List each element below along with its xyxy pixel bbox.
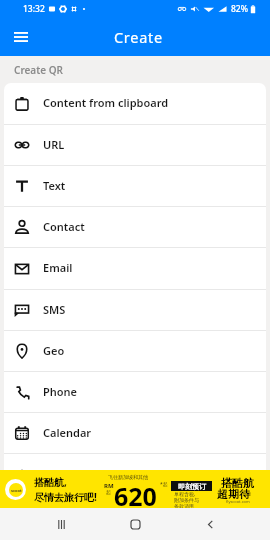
staticText: 起 — [106, 489, 111, 495]
button[interactable]: Text — [4, 166, 266, 206]
staticText: 尽情去旅行吧! — [34, 490, 97, 504]
staticText: RM — [104, 482, 114, 490]
button[interactable]: Back — [196, 510, 224, 538]
button[interactable]: Open navigation menu — [7, 23, 34, 50]
staticText: SMS — [43, 302, 66, 317]
staticText: 搭酷航 — [221, 476, 254, 490]
staticText: Contact — [43, 219, 85, 234]
staticText: *起 — [160, 481, 168, 488]
staticText: Content from clipboard — [43, 95, 169, 110]
staticText: Email — [43, 260, 73, 275]
staticText: 单程含税, — [174, 491, 196, 498]
staticText: Wi-Fi — [43, 466, 70, 481]
staticText: 13:32 — [23, 3, 45, 15]
staticText: 条款适用 — [174, 503, 194, 508]
staticText: 超期待 — [217, 487, 250, 501]
staticText: 即刻预订 — [178, 482, 206, 491]
button[interactable]: SMS — [4, 290, 266, 330]
button[interactable]: Event — [4, 496, 266, 536]
staticText: Create QR — [14, 63, 64, 77]
staticText: 620 — [114, 479, 157, 508]
staticText: Text — [43, 178, 66, 193]
button[interactable]: Advertisement — [0, 470, 270, 508]
staticText: flyscoot.com — [226, 499, 250, 504]
button[interactable]: Wi-Fi — [4, 454, 266, 495]
staticText: Event — [43, 508, 74, 523]
button[interactable]: Home — [121, 510, 149, 538]
staticText: Geo — [43, 343, 65, 358]
staticText: 附加条件与 — [174, 497, 199, 503]
staticText: Create — [114, 27, 163, 47]
staticText: 飞往新加坡和其他 — [108, 474, 148, 480]
staticText: URL — [43, 137, 65, 152]
staticText: 82% — [231, 3, 248, 15]
button[interactable]: Geo — [4, 331, 266, 371]
button[interactable]: Content from clipboard — [4, 83, 266, 124]
staticText: scoot — [11, 488, 22, 493]
button[interactable]: Contact — [4, 207, 266, 247]
button[interactable]: 即刻预订 — [171, 481, 212, 491]
button[interactable]: Calendar — [4, 413, 266, 453]
button[interactable]: Email — [4, 248, 266, 289]
staticText: 搭酷航, — [34, 475, 67, 489]
button[interactable]: URL — [4, 125, 266, 165]
button[interactable]: Recent apps — [47, 510, 75, 538]
staticText: Phone — [43, 384, 78, 399]
staticText: Calendar — [43, 425, 92, 440]
button[interactable]: Phone — [4, 372, 266, 412]
